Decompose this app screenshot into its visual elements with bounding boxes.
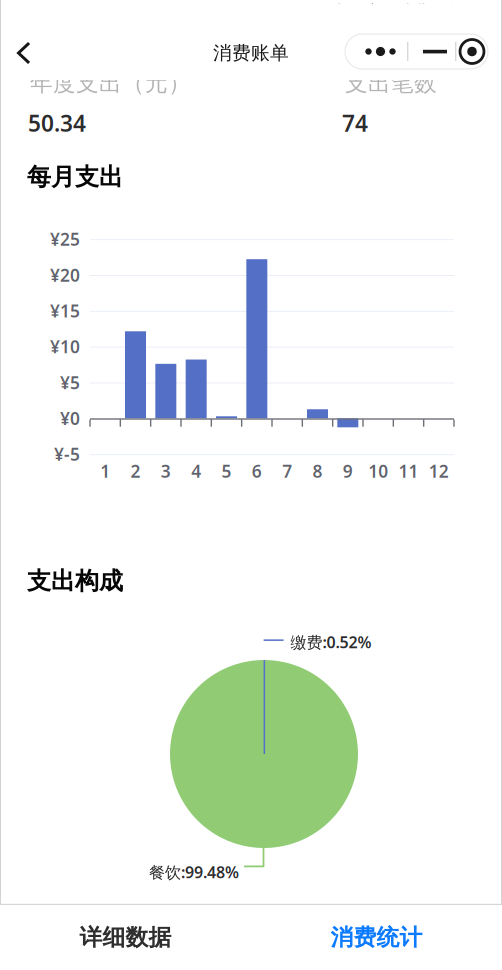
staticText: 支出构成 (27, 566, 123, 596)
staticText: 74 (342, 108, 368, 138)
staticText: ¥-5 (54, 443, 80, 466)
staticText: 9 (343, 459, 353, 482)
staticText: 详细数据 (79, 924, 171, 951)
staticText: ¥20 (50, 263, 80, 286)
staticText: 消费统计 (330, 924, 422, 951)
staticText: ¥5 (60, 371, 80, 394)
staticText: 4 (191, 459, 201, 482)
staticText: 10 (368, 459, 388, 482)
button[interactable]: Back (8, 36, 52, 69)
button[interactable]: Close (456, 34, 488, 69)
staticText: 1 (100, 459, 110, 482)
staticText: 7 (282, 459, 292, 482)
staticText: 消费账单 (213, 41, 289, 64)
staticText: 11 (398, 459, 418, 482)
staticText: 每月支出 (27, 162, 123, 192)
staticText: 年度支出（元） (30, 69, 191, 97)
staticText: ¥15 (50, 299, 80, 322)
staticText: ¥25 (50, 228, 80, 251)
staticText: ¥0 (60, 407, 80, 430)
staticText: 缴费:0.52% (290, 631, 371, 653)
staticText: 微信小程序 · 消费账单统计页 (296, 0, 464, 44)
staticText: 餐饮:99.48% (149, 861, 239, 883)
button[interactable]: More (345, 34, 407, 69)
staticText: 8 (312, 459, 322, 482)
staticText: ¥10 (50, 335, 80, 358)
staticText: 12 (429, 459, 449, 482)
staticText: 3 (161, 459, 171, 482)
staticText: 支出笔数 (345, 69, 437, 97)
button[interactable]: 消费统计 (251, 905, 502, 970)
staticText: 6 (252, 459, 262, 482)
staticText: 2 (130, 459, 140, 482)
button[interactable]: 详细数据 (0, 905, 251, 970)
button[interactable]: Minimize (416, 34, 454, 69)
staticText: 5 (221, 459, 231, 482)
staticText: 50.34 (28, 108, 86, 138)
